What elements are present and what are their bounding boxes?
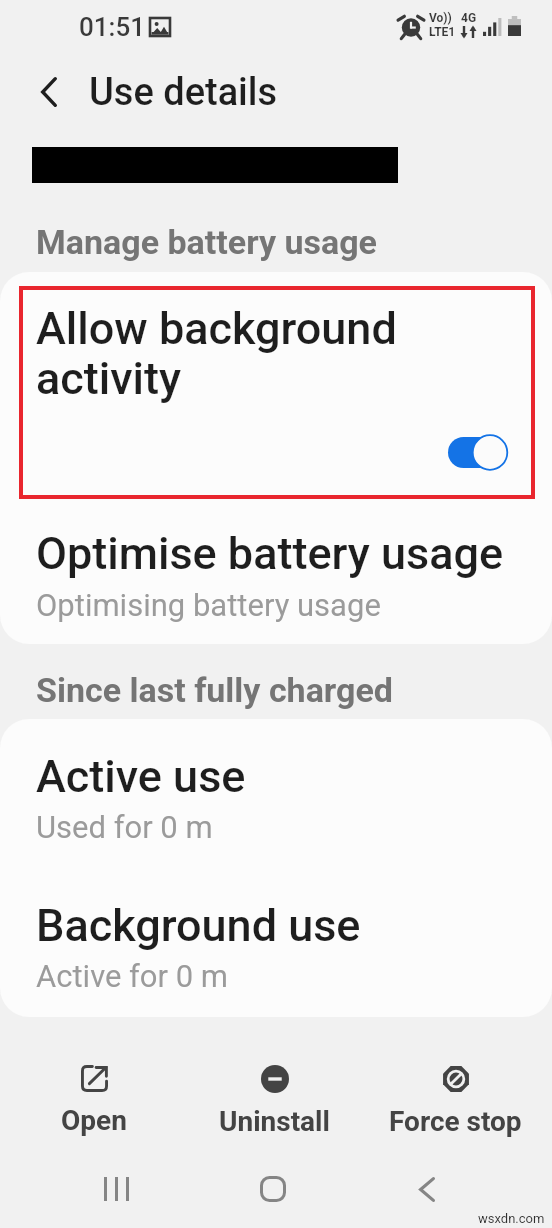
staticText: Background use: [36, 899, 361, 952]
button[interactable]: Back: [393, 1155, 461, 1223]
staticText: 01:51: [79, 12, 145, 42]
button[interactable]: Recent apps: [82, 1155, 150, 1223]
staticText: Active for 0 m: [36, 958, 229, 994]
staticText: Uninstall: [219, 1105, 330, 1138]
staticText: 4G: [461, 11, 477, 25]
button[interactable]: Allow background activity: [0, 272, 552, 498]
staticText: Active use: [36, 750, 246, 803]
button[interactable]: Home: [239, 1155, 307, 1223]
button[interactable]: Active use: [0, 719, 552, 868]
staticText: Open: [61, 1104, 127, 1137]
staticText: Since last fully charged: [36, 670, 393, 710]
button[interactable]: Back: [23, 59, 71, 107]
button[interactable]: Background use: [0, 868, 552, 1017]
staticText: Use details: [89, 70, 278, 115]
staticText: Manage battery usage: [36, 222, 377, 262]
staticText: Used for 0 m: [36, 809, 213, 845]
staticText: LTE1: [429, 25, 456, 39]
staticText: Optimise battery usage: [36, 527, 504, 580]
button[interactable]: Uninstall: [182, 1042, 366, 1138]
button[interactable]: Force stop: [363, 1042, 547, 1138]
button[interactable]: Optimise battery usage: [0, 498, 552, 644]
staticText: wsxdn.com: [478, 1211, 545, 1226]
staticText: Optimising battery usage: [36, 587, 381, 623]
button[interactable]: Open: [2, 1042, 186, 1138]
staticText: Vo)): [429, 11, 452, 25]
staticText: Force stop: [389, 1105, 522, 1138]
staticText: Allow background activity: [36, 302, 397, 405]
